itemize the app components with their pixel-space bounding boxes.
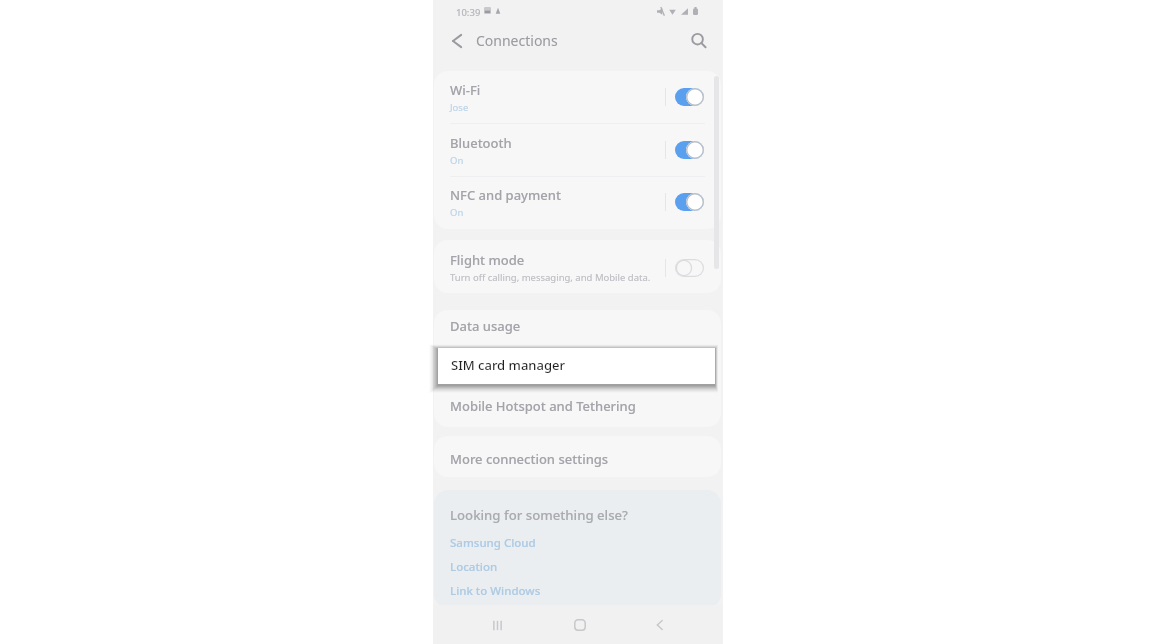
button[interactable]: Link to Windows bbox=[434, 581, 721, 601]
staticText: SIM card manager bbox=[451, 356, 565, 374]
button[interactable]: Wi-Fi bbox=[434, 71, 721, 123]
staticText: Data usage bbox=[450, 317, 521, 335]
button[interactable]: Switch on bbox=[675, 193, 704, 211]
button[interactable]: Recent apps bbox=[482, 610, 512, 640]
button[interactable]: SIM card manager bbox=[438, 348, 715, 384]
button[interactable]: More connection settings bbox=[434, 438, 721, 477]
staticText: Looking for something else? bbox=[450, 506, 629, 524]
button[interactable]: Search bbox=[685, 27, 713, 55]
button[interactable]: Mobile Hotspot and Tethering bbox=[434, 384, 721, 427]
button[interactable]: Location bbox=[434, 557, 721, 577]
staticText: On bbox=[450, 206, 464, 219]
staticText: Samsung Cloud bbox=[450, 535, 536, 551]
staticText: 10:39 bbox=[456, 6, 481, 19]
button[interactable]: Flight mode bbox=[434, 241, 721, 293]
staticText: NFC and payment bbox=[450, 186, 561, 204]
button[interactable]: Back bbox=[645, 610, 675, 640]
staticText: Mobile Hotspot and Tethering bbox=[450, 397, 636, 415]
staticText: Wi-Fi bbox=[450, 81, 481, 99]
staticText: Connections bbox=[476, 31, 558, 50]
staticText: Flight mode bbox=[450, 251, 525, 269]
staticText: Location bbox=[450, 559, 498, 575]
staticText: Link to Windows bbox=[450, 583, 541, 599]
button[interactable]: Data usage bbox=[434, 310, 721, 343]
button[interactable]: SIM card manager bbox=[434, 345, 721, 384]
staticText: SIM card manager bbox=[450, 356, 564, 374]
button[interactable]: Bluetooth bbox=[434, 124, 721, 176]
staticText: Jose bbox=[450, 101, 469, 114]
staticText: Bluetooth bbox=[450, 134, 512, 152]
button[interactable]: NFC and payment bbox=[434, 176, 721, 228]
button[interactable]: Switch on bbox=[675, 88, 704, 106]
button[interactable]: Samsung Cloud bbox=[434, 533, 721, 553]
staticText: Turn off calling, messaging, and Mobile … bbox=[450, 271, 651, 284]
button[interactable]: Switch off bbox=[675, 259, 704, 277]
button[interactable]: Switch on bbox=[675, 141, 704, 159]
staticText: On bbox=[450, 154, 464, 167]
staticText: More connection settings bbox=[450, 450, 609, 468]
button[interactable]: Back bbox=[444, 28, 470, 54]
button[interactable]: Home bbox=[565, 610, 595, 640]
